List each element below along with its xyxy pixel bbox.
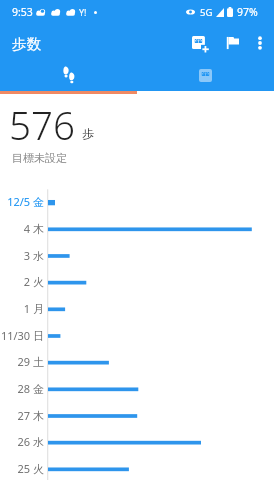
staticText: 2 火 [23,274,44,289]
staticText: 歩 [82,126,94,141]
staticText: 9:53 [12,5,33,19]
button[interactable]: 12/5 金 [0,189,274,216]
staticText: 11/30 日 [0,328,44,343]
button[interactable]: 27 木 [0,403,274,430]
button[interactable]: Steps tab [0,60,137,91]
staticText: 3 水 [23,248,44,263]
button[interactable]: Weight tab [137,60,274,91]
button[interactable]: 29 土 [0,349,274,376]
button[interactable]: 3 水 [0,243,274,270]
staticText: 26 水 [17,434,44,449]
staticText: 27 木 [17,408,44,423]
button[interactable]: 25 火 [0,456,274,480]
staticText: 歩数 [12,35,41,53]
button[interactable]: 11/30 日 [0,323,274,350]
button[interactable]: 1 月 [0,296,274,323]
staticText: 29 土 [17,354,44,369]
staticText: 4 木 [23,221,44,236]
button[interactable]: 26 水 [0,429,274,456]
staticText: 目標未設定 [12,151,67,165]
staticText: 97% [237,5,258,19]
button[interactable]: More options [249,25,271,61]
staticText: 5G [200,6,213,19]
button[interactable]: Set goal [219,25,245,61]
staticText: 12/5 金 [7,194,44,209]
button[interactable]: Add weight record [184,26,216,62]
button[interactable]: 4 木 [0,216,274,243]
staticText: Y! [79,6,87,18]
button[interactable]: 28 金 [0,376,274,403]
staticText: 576 [9,99,75,151]
staticText: 25 火 [17,461,44,476]
staticText: 1 月 [23,301,44,316]
button[interactable]: 2 火 [0,269,274,296]
staticText: 28 金 [17,381,44,396]
